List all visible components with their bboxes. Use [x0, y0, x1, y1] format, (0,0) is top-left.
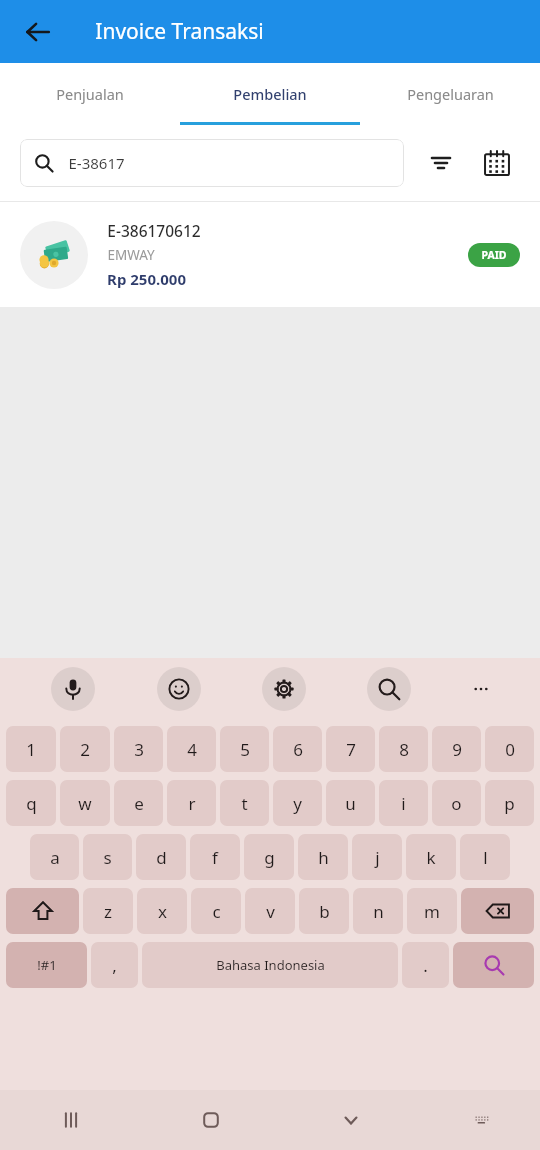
staticText: o: [451, 792, 462, 815]
staticText: i: [401, 792, 406, 815]
button[interactable]: 1: [6, 726, 56, 772]
staticText: EMWAY: [107, 246, 155, 264]
button[interactable]: 5: [220, 726, 269, 772]
button[interactable]: Voice input: [51, 667, 95, 711]
staticText: z: [104, 900, 112, 923]
button[interactable]: a: [30, 834, 79, 880]
button[interactable]: h: [298, 834, 348, 880]
button[interactable]: Recent apps: [0, 1090, 141, 1150]
staticText: x: [158, 900, 167, 923]
button[interactable]: x: [137, 888, 187, 934]
button[interactable]: PAID: [468, 243, 520, 267]
button[interactable]: p: [485, 780, 534, 826]
button[interactable]: Pengeluaran: [360, 63, 540, 125]
button[interactable]: m: [407, 888, 457, 934]
staticText: r: [188, 792, 196, 815]
button[interactable]: t: [220, 780, 269, 826]
staticText: 3: [134, 738, 144, 761]
button[interactable]: s: [83, 834, 132, 880]
staticText: l: [483, 846, 488, 869]
button[interactable]: 6: [273, 726, 322, 772]
button[interactable]: f: [190, 834, 240, 880]
staticText: b: [319, 900, 330, 923]
button[interactable]: Back: [14, 8, 62, 56]
button[interactable]: Hide keyboard: [281, 1090, 421, 1150]
staticText: h: [318, 846, 329, 869]
button[interactable]: l: [460, 834, 510, 880]
button[interactable]: r: [167, 780, 216, 826]
button[interactable]: 0: [485, 726, 534, 772]
button[interactable]: n: [353, 888, 403, 934]
staticText: e: [134, 792, 144, 815]
button[interactable]: 3: [114, 726, 163, 772]
staticText: u: [345, 792, 356, 815]
button[interactable]: E-386170612: [0, 202, 540, 307]
staticText: Bahasa Indonesia: [216, 956, 325, 974]
button[interactable]: q: [6, 780, 56, 826]
staticText: 2: [80, 738, 90, 761]
staticText: ,: [112, 954, 117, 977]
button[interactable]: Shift: [6, 888, 79, 934]
staticText: g: [264, 846, 275, 869]
button[interactable]: w: [60, 780, 110, 826]
staticText: PAID: [481, 248, 507, 262]
button[interactable]: e: [114, 780, 163, 826]
button[interactable]: Pembelian: [180, 63, 360, 125]
staticText: a: [50, 846, 60, 869]
staticText: Rp 250.000: [107, 269, 186, 289]
button[interactable]: Backspace: [461, 888, 534, 934]
button[interactable]: 8: [379, 726, 428, 772]
button[interactable]: k: [406, 834, 456, 880]
staticText: k: [426, 846, 436, 869]
staticText: E-38617: [68, 153, 125, 173]
button[interactable]: d: [136, 834, 186, 880]
button[interactable]: Emoji: [157, 667, 201, 711]
staticText: !#1: [37, 956, 57, 974]
button[interactable]: 4: [167, 726, 216, 772]
button[interactable]: 9: [432, 726, 481, 772]
staticText: v: [266, 900, 275, 923]
button[interactable]: Search: [367, 667, 411, 711]
button[interactable]: b: [299, 888, 349, 934]
button[interactable]: o: [432, 780, 481, 826]
button[interactable]: Calendar: [474, 140, 520, 186]
staticText: s: [103, 846, 112, 869]
button[interactable]: E-38617: [20, 139, 404, 187]
button[interactable]: v: [245, 888, 295, 934]
button[interactable]: Settings: [262, 667, 306, 711]
button[interactable]: 2: [60, 726, 110, 772]
button[interactable]: Search: [453, 942, 534, 988]
button[interactable]: g: [244, 834, 294, 880]
staticText: .: [423, 954, 428, 977]
staticText: 8: [399, 738, 409, 761]
staticText: Invoice Transaksi: [95, 17, 264, 46]
staticText: Pembelian: [233, 84, 307, 104]
staticText: m: [424, 900, 440, 923]
button[interactable]: Bahasa Indonesia: [142, 942, 398, 988]
button[interactable]: Home: [141, 1090, 281, 1150]
button[interactable]: .: [402, 942, 449, 988]
button[interactable]: Switch keyboard: [421, 1090, 540, 1150]
staticText: 6: [293, 738, 303, 761]
staticText: Pengeluaran: [407, 84, 494, 104]
button[interactable]: y: [273, 780, 322, 826]
staticText: t: [241, 792, 248, 815]
button[interactable]: z: [83, 888, 133, 934]
staticText: d: [156, 846, 167, 869]
button[interactable]: !#1: [6, 942, 87, 988]
button[interactable]: 7: [326, 726, 375, 772]
staticText: n: [373, 900, 384, 923]
button[interactable]: j: [352, 834, 402, 880]
button[interactable]: Filter: [418, 140, 464, 186]
staticText: q: [26, 792, 37, 815]
button[interactable]: ,: [91, 942, 138, 988]
button[interactable]: u: [326, 780, 375, 826]
staticText: j: [375, 846, 380, 869]
button[interactable]: More options: [459, 667, 503, 711]
button[interactable]: Penjualan: [0, 63, 180, 125]
button[interactable]: c: [191, 888, 241, 934]
staticText: w: [78, 792, 92, 815]
staticText: Penjualan: [56, 84, 124, 104]
button[interactable]: i: [379, 780, 428, 826]
staticText: E-386170612: [107, 220, 201, 241]
